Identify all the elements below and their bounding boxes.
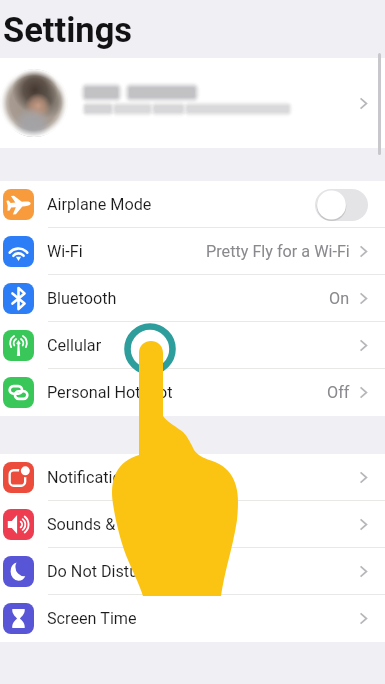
button[interactable]	[0, 58, 385, 148]
staticText: Airplane Mode	[47, 195, 152, 214]
staticText: Off	[327, 383, 350, 402]
button[interactable]: Notifications	[0, 454, 385, 501]
button[interactable]: Wi-Fi	[0, 228, 385, 275]
staticText: Wi-Fi	[47, 242, 83, 261]
staticText: Personal Hotspot	[47, 383, 173, 402]
button[interactable]: Personal Hotspot	[0, 369, 385, 416]
staticText: Bluetooth	[47, 289, 117, 308]
button[interactable]: Screen Time	[0, 595, 385, 642]
button[interactable]: Sounds & Haptics	[0, 501, 385, 548]
staticText: Notifications	[47, 468, 140, 487]
button[interactable]: Cellular	[0, 322, 385, 369]
button[interactable]: Do Not Disturb	[0, 548, 385, 595]
staticText: Settings	[3, 10, 133, 50]
button[interactable]: Airplane Mode toggle	[315, 189, 368, 221]
button[interactable]: Bluetooth	[0, 275, 385, 322]
staticText: On	[329, 289, 350, 308]
staticText: Pretty Fly for a Wi-Fi	[206, 242, 350, 261]
staticText: Screen Time	[47, 609, 137, 628]
staticText: Do Not Disturb	[47, 562, 153, 581]
staticText: Sounds & Haptics	[47, 515, 175, 534]
button[interactable]: Airplane Mode	[0, 181, 385, 228]
staticText: Cellular	[47, 336, 102, 355]
